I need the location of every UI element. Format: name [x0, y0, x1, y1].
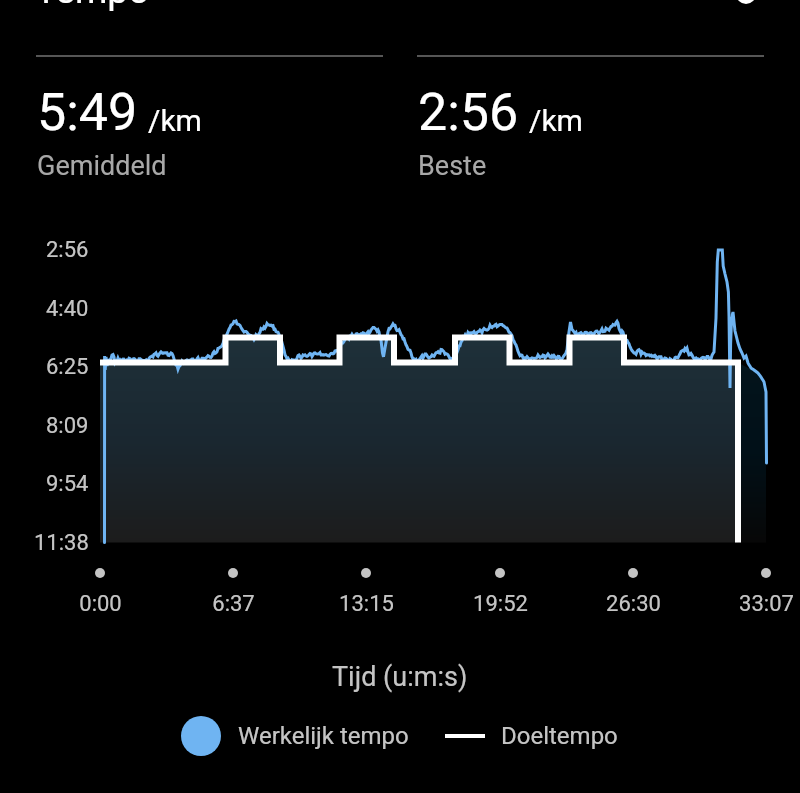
staticText: 5:49	[37, 82, 138, 143]
staticText: Gemiddeld	[37, 150, 167, 182]
button[interactable]: Doeltempo	[445, 722, 618, 750]
staticText: 26:30	[606, 591, 661, 617]
button[interactable]: Werkelijk tempo	[181, 716, 409, 756]
staticText: 11:38	[34, 530, 89, 556]
staticText: 9:54	[46, 471, 89, 497]
staticText: 8:09	[46, 413, 89, 439]
staticText: 33:07	[739, 591, 794, 617]
staticText: /km	[529, 103, 583, 138]
staticText: Tijd (u:m:s)	[332, 661, 468, 693]
staticText: 19:52	[473, 591, 528, 617]
staticText: 0:00	[79, 591, 122, 617]
staticText: 6:25	[46, 354, 89, 380]
button[interactable]: More options	[736, 0, 756, 4]
staticText: 2:56	[46, 237, 89, 263]
staticText: 6:37	[212, 591, 255, 617]
staticText: Tempo	[35, 0, 150, 12]
staticText: 4:40	[46, 296, 89, 322]
staticText: Beste	[418, 150, 487, 182]
staticText: Doeltempo	[501, 722, 618, 750]
staticText: /km	[148, 103, 202, 138]
staticText: 13:15	[339, 591, 394, 617]
staticText: Werkelijk tempo	[238, 722, 409, 750]
staticText: 2:56	[418, 82, 519, 143]
